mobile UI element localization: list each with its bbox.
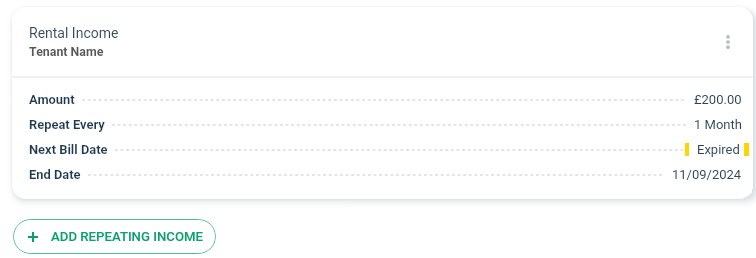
staticText: Expired — [697, 142, 740, 157]
button[interactable]: Rental Income — [12, 7, 753, 76]
staticText: Repeat Every — [29, 117, 105, 132]
button[interactable]: Next Bill Date — [29, 137, 749, 162]
staticText: Next Bill Date — [29, 142, 108, 157]
staticText: End Date — [29, 167, 81, 182]
staticText: ADD REPEATING INCOME — [51, 229, 204, 244]
staticText: Rental Income — [29, 25, 119, 41]
button[interactable]: End Date — [29, 162, 749, 187]
button[interactable]: More options — [702, 20, 753, 64]
staticText: £200.00 — [694, 92, 742, 107]
staticText: 1 Month — [694, 117, 742, 132]
staticText: Amount — [29, 92, 75, 107]
staticText: Tenant Name — [29, 44, 104, 59]
button[interactable]: Repeat Every — [29, 112, 749, 137]
button[interactable]: ADD REPEATING INCOME — [13, 219, 216, 254]
staticText: 11/09/2024 — [672, 167, 742, 182]
button[interactable]: Amount — [29, 87, 749, 112]
